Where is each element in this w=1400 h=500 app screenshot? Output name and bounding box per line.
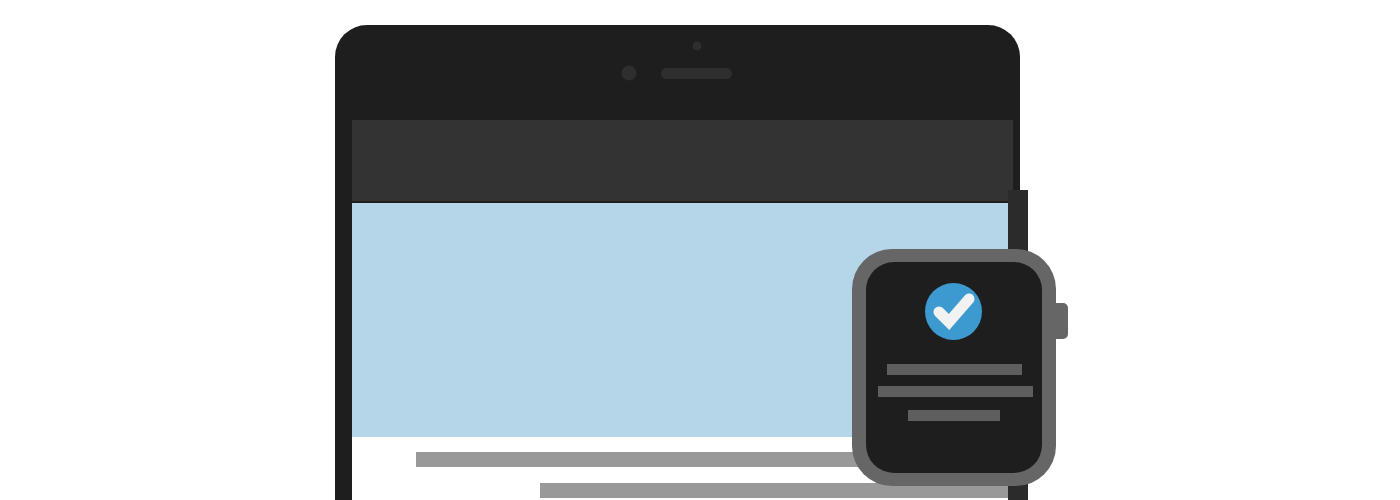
button[interactable]: Phone device: [0, 0, 1400, 500]
button[interactable]: Smartwatch notification: [0, 0, 1400, 500]
